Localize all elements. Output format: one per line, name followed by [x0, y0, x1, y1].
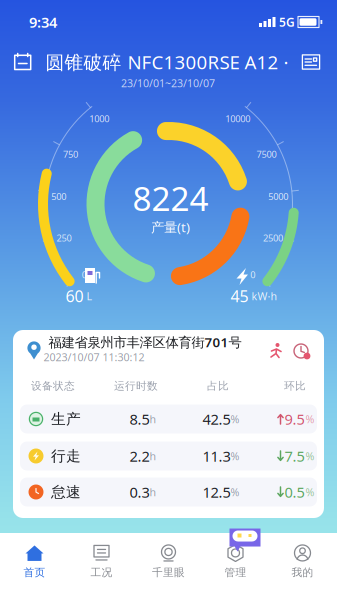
staticText: 500: [51, 190, 66, 202]
staticText: 11.3: [202, 446, 230, 466]
button[interactable]: Device list: [298, 49, 324, 75]
button[interactable]: 管理: [202, 538, 269, 584]
button[interactable]: Track: [0, 0, 337, 600]
staticText: 0: [250, 268, 255, 281]
staticText: 千里眼: [152, 566, 185, 579]
button[interactable]: 工况: [68, 538, 135, 584]
staticText: 5000: [268, 190, 288, 202]
staticText: 9:34: [29, 12, 57, 32]
staticText: 2023/10/07 11:30:12: [43, 350, 144, 364]
staticText: 运行时数: [114, 379, 158, 392]
staticText: 产量(t): [151, 218, 190, 236]
staticText: 管理: [224, 566, 246, 579]
button[interactable]: History: [0, 0, 337, 600]
staticText: %: [230, 449, 239, 463]
staticText: 23/10/01~23/10/07: [121, 76, 215, 90]
staticText: %: [305, 412, 314, 426]
staticText: 7500: [256, 148, 276, 160]
staticText: 0.5: [284, 482, 304, 502]
staticText: 首页: [23, 566, 45, 579]
staticText: %: [305, 449, 314, 463]
staticText: 8224: [132, 176, 208, 220]
staticText: 0.3: [129, 482, 149, 502]
staticText: %: [230, 412, 239, 426]
staticText: 2500: [263, 232, 283, 244]
staticText: h: [149, 412, 156, 426]
staticText: %: [305, 485, 314, 499]
staticText: L: [86, 289, 92, 303]
button[interactable]: Calendar: [10, 49, 36, 75]
staticText: 行走: [51, 447, 81, 465]
staticText: 圆锥破碎 NFC1300RSE A12 ·: [45, 50, 288, 74]
button[interactable]: 我的: [269, 538, 336, 584]
staticText: 生产: [51, 410, 81, 428]
staticText: 环比: [284, 379, 306, 392]
staticText: 8.5: [129, 409, 149, 429]
staticText: 2.2: [129, 446, 149, 466]
button[interactable]: 首页: [1, 538, 68, 584]
staticText: 设备状态: [31, 379, 75, 392]
staticText: 福建省泉州市丰泽区体育街701号: [48, 333, 241, 351]
staticText: 42.5: [202, 409, 230, 429]
staticText: 7.5: [284, 446, 304, 466]
staticText: h: [149, 485, 156, 499]
staticText: 1000: [89, 112, 109, 125]
staticText: 5G: [279, 14, 295, 30]
staticText: 怠速: [51, 483, 81, 501]
staticText: 10000: [225, 112, 250, 125]
staticText: 250: [56, 232, 71, 244]
button[interactable]: 千里眼: [135, 538, 202, 584]
staticText: 占比: [207, 379, 229, 392]
staticText: 9.5: [284, 409, 304, 429]
button[interactable]: Assistant: [229, 528, 260, 551]
staticText: 工况: [90, 566, 112, 579]
staticText: 12.5: [202, 482, 230, 502]
staticText: 我的: [291, 566, 313, 579]
staticText: %: [230, 485, 239, 499]
staticText: h: [149, 449, 156, 463]
staticText: 0: [82, 268, 87, 281]
staticText: 60: [65, 285, 83, 307]
staticText: 750: [63, 148, 78, 160]
staticText: kW·h: [251, 289, 277, 303]
staticText: 45: [230, 285, 248, 307]
